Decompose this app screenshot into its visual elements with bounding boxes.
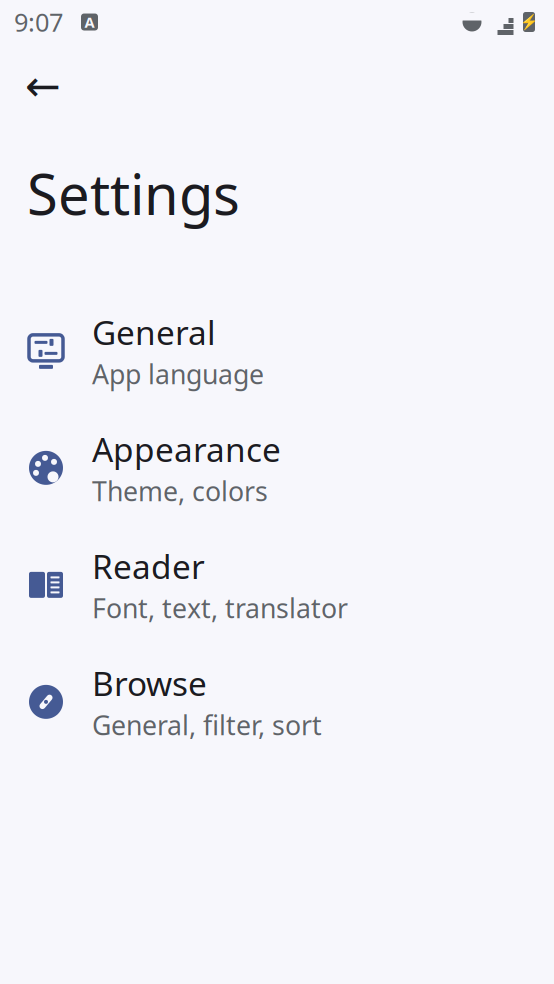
staticText: A	[84, 12, 94, 32]
staticText: Settings	[27, 156, 240, 230]
staticText: Theme, colors	[92, 473, 268, 509]
button[interactable]: Browse	[0, 643, 554, 760]
staticText: General	[92, 310, 216, 354]
button[interactable]: General	[0, 292, 554, 409]
staticText: Browse	[92, 661, 207, 705]
staticText: Appearance	[92, 427, 281, 471]
staticText: 9:07	[14, 5, 63, 39]
staticText: ⚡	[520, 14, 538, 30]
staticText: App language	[92, 356, 264, 392]
staticText: Reader	[92, 544, 205, 588]
staticText: General, filter, sort	[92, 707, 322, 743]
button[interactable]: Reader	[0, 526, 554, 643]
button[interactable]: Back	[15, 58, 71, 114]
staticText: ←	[25, 62, 61, 110]
staticText: Font, text, translator	[92, 590, 348, 626]
button[interactable]: Appearance	[0, 409, 554, 526]
